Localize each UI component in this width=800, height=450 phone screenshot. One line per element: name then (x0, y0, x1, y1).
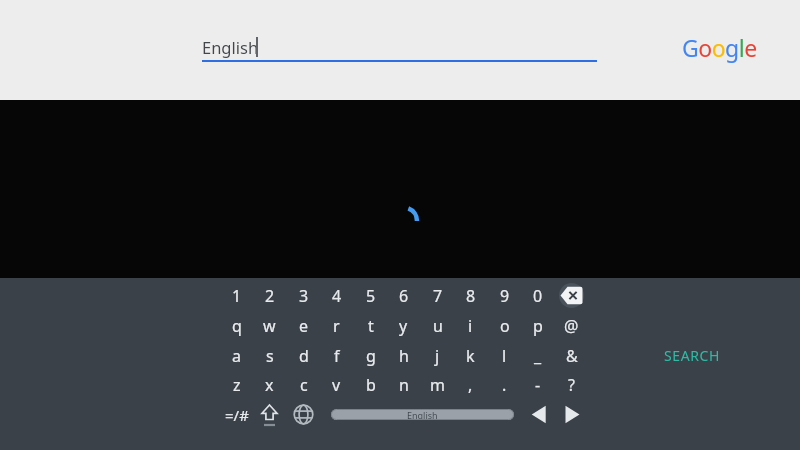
button[interactable]: n (387, 370, 420, 399)
staticText: z (233, 374, 241, 396)
staticText: j (435, 345, 440, 367)
staticText: - (535, 374, 541, 396)
button[interactable]: s (253, 341, 286, 370)
button[interactable]: a (220, 341, 253, 370)
button[interactable]: English (331, 409, 514, 420)
staticText: c (300, 374, 308, 396)
button[interactable]: @ (555, 311, 588, 340)
staticText: 1 (232, 285, 242, 307)
button[interactable]: i (454, 311, 487, 340)
button[interactable] (555, 400, 588, 429)
button[interactable]: 6 (387, 281, 420, 310)
staticText: d (299, 345, 309, 367)
staticText: e (299, 315, 309, 337)
button[interactable]: w (253, 311, 286, 340)
staticText: b (366, 374, 376, 396)
button[interactable]: Google (682, 30, 772, 64)
button[interactable]: d (287, 341, 320, 370)
button[interactable]: SEARCH (649, 345, 734, 365)
button[interactable] (555, 281, 588, 310)
button[interactable]: 9 (488, 281, 521, 310)
button[interactable] (253, 400, 286, 429)
button[interactable]: v (320, 370, 353, 399)
staticText: 6 (399, 285, 409, 307)
button[interactable]: c (287, 370, 320, 399)
button[interactable]: x (253, 370, 286, 399)
staticText: x (265, 374, 274, 396)
staticText: 8 (466, 285, 476, 307)
button[interactable]: q (220, 311, 253, 340)
staticText: ? (568, 374, 575, 396)
staticText: & (566, 345, 578, 367)
button[interactable]: =/# (220, 400, 253, 429)
staticText: p (533, 315, 543, 337)
button[interactable]: e (287, 311, 320, 340)
staticText: q (232, 315, 242, 337)
staticText: 9 (500, 285, 510, 307)
staticText: English (202, 36, 259, 58)
button[interactable]: p (521, 311, 554, 340)
button[interactable]: 8 (454, 281, 487, 310)
staticText: n (399, 374, 409, 396)
button[interactable]: t (354, 311, 387, 340)
staticText: 7 (433, 285, 443, 307)
staticText: l (502, 345, 507, 367)
staticText: s (266, 345, 274, 367)
button[interactable]: . (488, 370, 521, 399)
button[interactable]: - (521, 370, 554, 399)
staticText: t (368, 315, 374, 337)
staticText: g (366, 345, 376, 367)
button[interactable]: 7 (421, 281, 454, 310)
staticText: , (468, 374, 473, 396)
button[interactable]: & (555, 341, 588, 370)
staticText: 4 (332, 285, 342, 307)
button[interactable]: 3 (287, 281, 320, 310)
button[interactable]: 5 (354, 281, 387, 310)
staticText: i (468, 315, 473, 337)
button[interactable] (521, 400, 554, 429)
button[interactable]: o (488, 311, 521, 340)
staticText: English (407, 409, 438, 420)
staticText: Google (682, 32, 757, 63)
button[interactable]: m (421, 370, 454, 399)
staticText: a (232, 345, 241, 367)
button[interactable]: u (421, 311, 454, 340)
button[interactable]: h (387, 341, 420, 370)
staticText: w (263, 315, 276, 337)
button[interactable]: y (387, 311, 420, 340)
button[interactable]: b (354, 370, 387, 399)
button[interactable]: j (421, 341, 454, 370)
staticText: m (430, 374, 445, 396)
staticText: 2 (265, 285, 275, 307)
button[interactable]: k (454, 341, 487, 370)
staticText: SEARCH (664, 346, 720, 365)
button[interactable]: l (488, 341, 521, 370)
staticText: . (502, 374, 507, 396)
staticText: r (333, 315, 340, 337)
staticText: y (399, 315, 408, 337)
staticText: f (334, 345, 340, 367)
button[interactable]: ? (555, 370, 588, 399)
button[interactable]: 1 (220, 281, 253, 310)
staticText: 5 (366, 285, 376, 307)
staticText: v (332, 374, 341, 396)
staticText: u (433, 315, 443, 337)
staticText: 0 (533, 285, 543, 307)
button[interactable]: 0 (521, 281, 554, 310)
staticText: h (399, 345, 409, 367)
button[interactable]: f (320, 341, 353, 370)
button[interactable]: z (220, 370, 253, 399)
staticText: k (466, 345, 475, 367)
button[interactable]: g (354, 341, 387, 370)
button[interactable]: 4 (320, 281, 353, 310)
staticText: =/# (225, 405, 249, 425)
button[interactable]: _ (521, 341, 554, 370)
button[interactable]: 2 (253, 281, 286, 310)
button[interactable]: r (320, 311, 353, 340)
staticText: 3 (299, 285, 309, 307)
button[interactable]: , (454, 370, 487, 399)
staticText: @ (564, 315, 579, 337)
button[interactable] (287, 400, 320, 429)
staticText: _ (534, 345, 542, 367)
staticText: o (500, 315, 510, 337)
